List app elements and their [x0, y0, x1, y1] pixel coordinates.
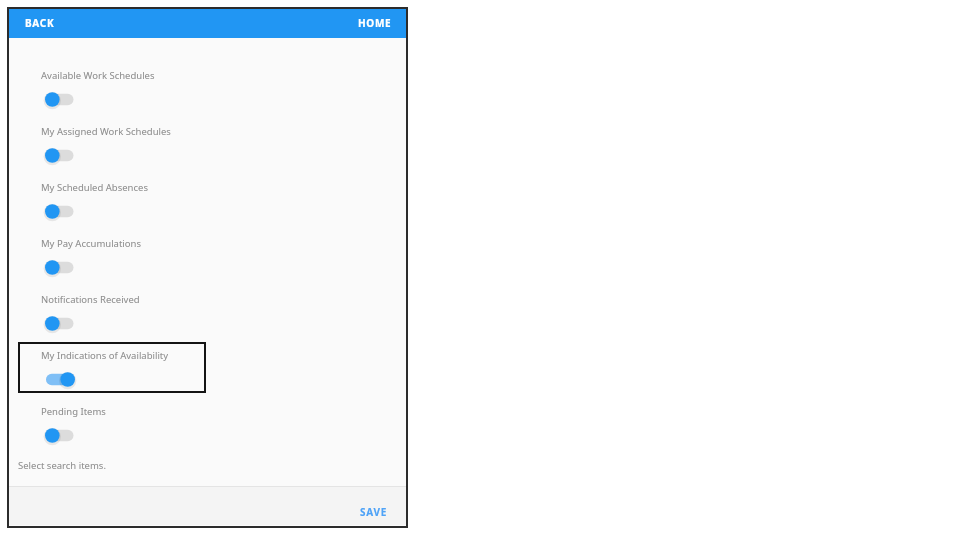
button[interactable]: Switch off	[44, 426, 77, 445]
staticText: SAVE	[360, 505, 387, 519]
button[interactable]: Switch off	[44, 146, 77, 165]
button[interactable]: Pending Items	[7, 396, 408, 452]
staticText: Available Work Schedules	[41, 69, 155, 82]
button[interactable]: My Scheduled Absences	[7, 172, 408, 228]
button[interactable]: Switch off	[44, 258, 77, 277]
button[interactable]: BACK	[7, 11, 65, 35]
button[interactable]: My Indications of Availability	[7, 340, 408, 396]
staticText: HOME	[358, 16, 392, 30]
button[interactable]: Switch off	[44, 90, 77, 109]
staticText: Select search items.	[18, 459, 106, 472]
button[interactable]: Switch on	[44, 370, 77, 389]
button[interactable]: SAVE	[346, 499, 408, 525]
staticText: BACK	[25, 16, 55, 30]
button[interactable]: Available Work Schedules	[7, 60, 408, 116]
button[interactable]: Switch off	[44, 202, 77, 221]
button[interactable]: My Assigned Work Schedules	[7, 116, 408, 172]
staticText: Pending Items	[41, 405, 106, 418]
staticText: Notifications Received	[41, 293, 140, 306]
button[interactable]: HOME	[348, 11, 408, 35]
button[interactable]: My Pay Accumulations	[7, 228, 408, 284]
staticText: My Indications of Availability	[41, 349, 169, 362]
staticText: My Pay Accumulations	[41, 237, 141, 250]
staticText: My Assigned Work Schedules	[41, 125, 171, 138]
button[interactable]: Switch off	[44, 314, 77, 333]
button[interactable]: Notifications Received	[7, 284, 408, 340]
staticText: My Scheduled Absences	[41, 181, 148, 194]
